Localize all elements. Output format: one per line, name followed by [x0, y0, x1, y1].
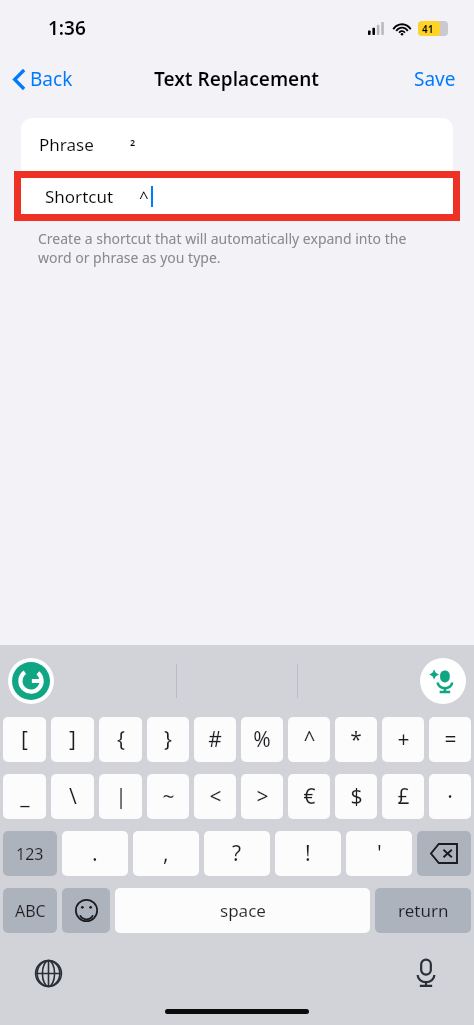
button[interactable]: Backspace [417, 831, 471, 876]
staticText: [ [21, 725, 28, 754]
staticText: ' [377, 839, 382, 868]
staticText: ABC [15, 900, 46, 922]
staticText: £ [397, 782, 410, 811]
staticText: Back [30, 66, 73, 92]
button[interactable]: Voice dictation [420, 658, 466, 704]
button[interactable]: Back [8, 62, 79, 96]
staticText: ^ [303, 725, 316, 754]
staticText: ? [232, 839, 242, 868]
button[interactable]: ? [204, 831, 270, 876]
button[interactable]: | [99, 774, 142, 819]
staticText: Phrase [39, 133, 94, 156]
button[interactable]: Shortcut [21, 178, 453, 214]
staticText: . [92, 839, 98, 868]
button[interactable]: Change keyboard language [28, 953, 68, 993]
button[interactable]: ! [275, 831, 341, 876]
staticText: · [447, 782, 453, 811]
staticText: = [444, 725, 457, 754]
staticText: return [398, 899, 449, 922]
button[interactable]: } [147, 717, 189, 762]
staticText: } [164, 725, 172, 754]
button[interactable]: return [375, 888, 471, 933]
button[interactable]: . [62, 831, 128, 876]
button[interactable]: + [382, 717, 424, 762]
staticText: Shortcut [45, 185, 114, 208]
staticText: ~ [162, 782, 175, 811]
staticText: * [350, 725, 362, 754]
staticText: _ [20, 782, 30, 811]
button[interactable]: _ [3, 774, 46, 819]
button[interactable]: , [133, 831, 199, 876]
staticText: { [117, 725, 125, 754]
staticText: € [303, 782, 316, 811]
staticText: $ [350, 782, 363, 811]
staticText: 2 [130, 136, 136, 148]
staticText: ^ [139, 185, 149, 208]
button[interactable]: space [115, 888, 370, 933]
button[interactable]: * [335, 717, 377, 762]
button[interactable]: # [194, 717, 236, 762]
staticText: space [220, 899, 266, 922]
button[interactable]: Dictate [406, 953, 446, 993]
staticText: \ [69, 782, 77, 811]
button[interactable]: · [429, 774, 471, 819]
staticText: 123 [16, 843, 44, 865]
button[interactable]: Save [408, 62, 462, 96]
staticText: ! [305, 839, 311, 868]
staticText: < [209, 782, 222, 811]
button[interactable]: € [288, 774, 330, 819]
staticText: # [208, 725, 222, 754]
button[interactable]: Emoji [62, 888, 110, 933]
staticText: > [256, 782, 269, 811]
staticText: 1:36 [48, 15, 86, 41]
button[interactable]: 123 [3, 831, 57, 876]
staticText: Save [414, 66, 456, 92]
staticText: , [163, 839, 169, 868]
button[interactable]: Phrase [21, 118, 453, 171]
button[interactable]: $ [335, 774, 377, 819]
staticText: ] [69, 725, 76, 754]
button[interactable]: Grammarly [8, 658, 54, 704]
button[interactable]: \ [51, 774, 94, 819]
button[interactable]: { [99, 717, 142, 762]
button[interactable]: < [194, 774, 236, 819]
button[interactable]: ^ [288, 717, 330, 762]
button[interactable]: > [241, 774, 283, 819]
button[interactable]: = [429, 717, 471, 762]
button[interactable]: ] [51, 717, 94, 762]
button[interactable]: ' [346, 831, 412, 876]
staticText: 41 [422, 22, 434, 36]
button[interactable]: ~ [147, 774, 189, 819]
button[interactable]: [ [3, 717, 46, 762]
button[interactable]: ABC [3, 888, 57, 933]
staticText: Text Replacement [154, 66, 320, 92]
button[interactable]: % [241, 717, 283, 762]
staticText: + [397, 725, 410, 754]
button[interactable]: £ [382, 774, 424, 819]
staticText: % [253, 725, 271, 754]
staticText: Create a shortcut that will automaticall… [38, 229, 407, 267]
staticText: | [115, 782, 127, 811]
